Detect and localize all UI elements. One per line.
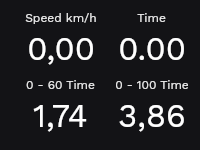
staticText: Speed km/h	[25, 11, 97, 25]
staticText: Time	[137, 11, 166, 25]
button[interactable]: Speed km/h	[15, 11, 106, 68]
staticText: 1,74	[33, 97, 88, 135]
staticText: 0 - 60 Time	[26, 78, 95, 92]
staticText: 0,00	[27, 30, 95, 68]
button[interactable]: Time	[106, 11, 197, 68]
staticText: 0.00	[118, 30, 186, 68]
button[interactable]: 0 - 100 Time	[106, 78, 197, 135]
staticText: 3,86	[118, 97, 186, 135]
staticText: 0 - 100 Time	[115, 78, 189, 92]
button[interactable]: 0 - 60 Time	[15, 78, 106, 135]
